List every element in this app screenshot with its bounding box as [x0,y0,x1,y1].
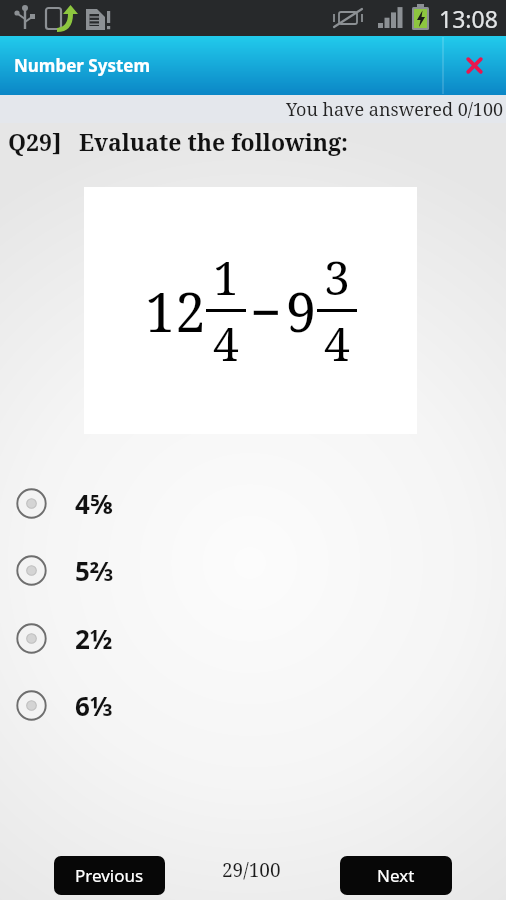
button[interactable]: Close quiz [443,36,506,95]
button[interactable]: 4⅝ [0,475,506,531]
staticText: Next [377,864,415,887]
staticText: 13:08 [439,3,498,34]
staticText: 3 [324,246,350,309]
staticText: Number System [14,54,151,77]
staticText: Q29] [8,126,62,157]
button[interactable]: 5⅔ [0,542,506,598]
staticText: 4 [213,312,239,375]
staticText: 12 [145,274,206,348]
button[interactable]: 6⅓ [0,677,506,733]
staticText: 6⅓ [75,688,113,723]
button[interactable]: Next [340,856,452,895]
staticText: 9 [286,274,317,348]
button[interactable]: Previous [54,856,165,895]
staticText: Evaluate the following: [79,126,349,157]
staticText: Previous [75,864,144,887]
button[interactable]: 2½ [0,610,506,666]
staticText: − [250,274,282,348]
staticText: 29/100 [222,857,281,883]
staticText: You have answered 0/100 [286,97,504,122]
staticText: 2½ [75,621,113,656]
staticText: 5⅔ [75,553,115,588]
staticText: 4 [324,312,350,375]
staticText: 1 [213,246,239,309]
staticText: 4⅝ [75,486,113,521]
